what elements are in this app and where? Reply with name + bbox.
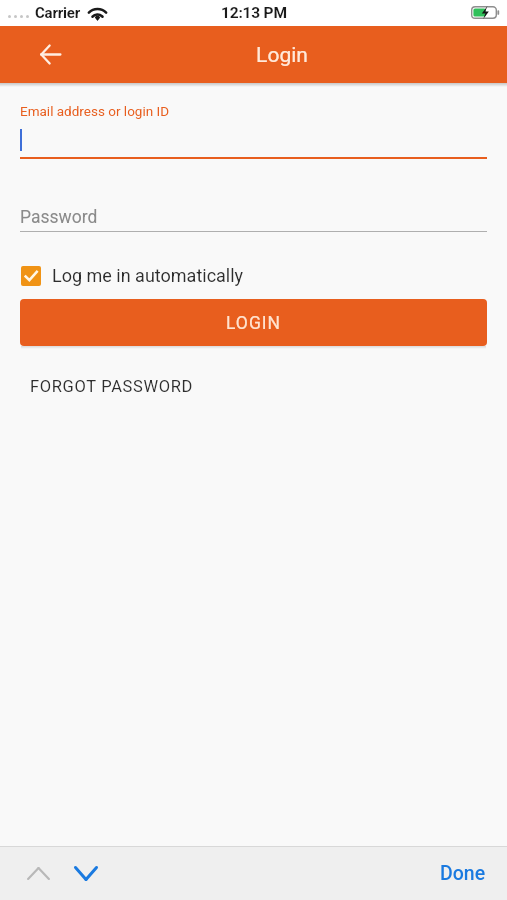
staticText: FORGOT PASSWORD — [30, 377, 194, 396]
staticText: Log me in automatically — [52, 265, 244, 286]
button[interactable]: Back — [0, 26, 100, 83]
staticText: Carrier — [35, 4, 80, 22]
button[interactable]: Log me in automatically — [21, 265, 258, 286]
button[interactable]: Next field — [62, 847, 109, 900]
button[interactable]: LOGIN — [20, 299, 487, 346]
staticText: Login — [256, 43, 308, 68]
staticText: LOGIN — [226, 313, 282, 334]
button[interactable]: Previous field — [15, 847, 62, 900]
staticText: Email address or login ID — [20, 103, 170, 119]
staticText: Password — [20, 207, 98, 228]
button[interactable]: Done — [440, 847, 486, 900]
staticText: Done — [440, 862, 486, 885]
button[interactable]: FORGOT PASSWORD — [20, 369, 204, 404]
staticText: 12:13 PM — [221, 4, 287, 22]
